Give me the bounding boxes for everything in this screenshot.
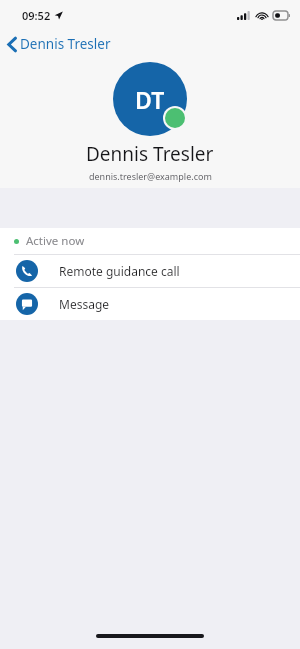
staticText: Active now [26,233,85,249]
button[interactable]: Dennis Tresler [0,32,121,56]
staticText: Message [59,296,110,312]
staticText: Dennis Tresler [86,141,214,167]
button[interactable]: Remote guidance call [0,255,300,287]
button[interactable]: Message [0,288,300,320]
staticText: dennis.tresler@example.com [89,170,212,182]
staticText: DT [135,84,165,115]
staticText: Dennis Tresler [20,35,111,53]
staticText: Remote guidance call [59,263,180,279]
staticText: 09:52 [22,8,51,23]
